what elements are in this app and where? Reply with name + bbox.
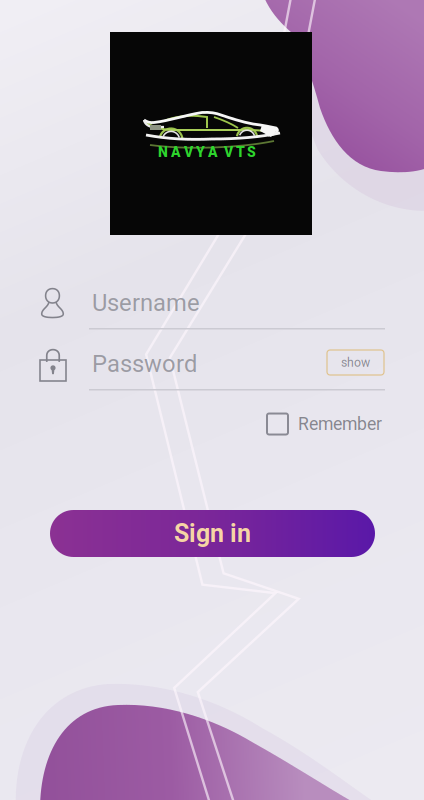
button[interactable]: show [327, 350, 384, 375]
button[interactable]: Remember [267, 412, 381, 436]
staticText: Remember [298, 414, 382, 434]
staticText: Username [92, 289, 200, 317]
button[interactable]: Sign in [50, 510, 375, 557]
staticText: N A V Y A V T S [158, 144, 256, 160]
staticText: Sign in [174, 519, 251, 548]
staticText: Password [92, 350, 197, 378]
staticText: show [341, 355, 370, 370]
